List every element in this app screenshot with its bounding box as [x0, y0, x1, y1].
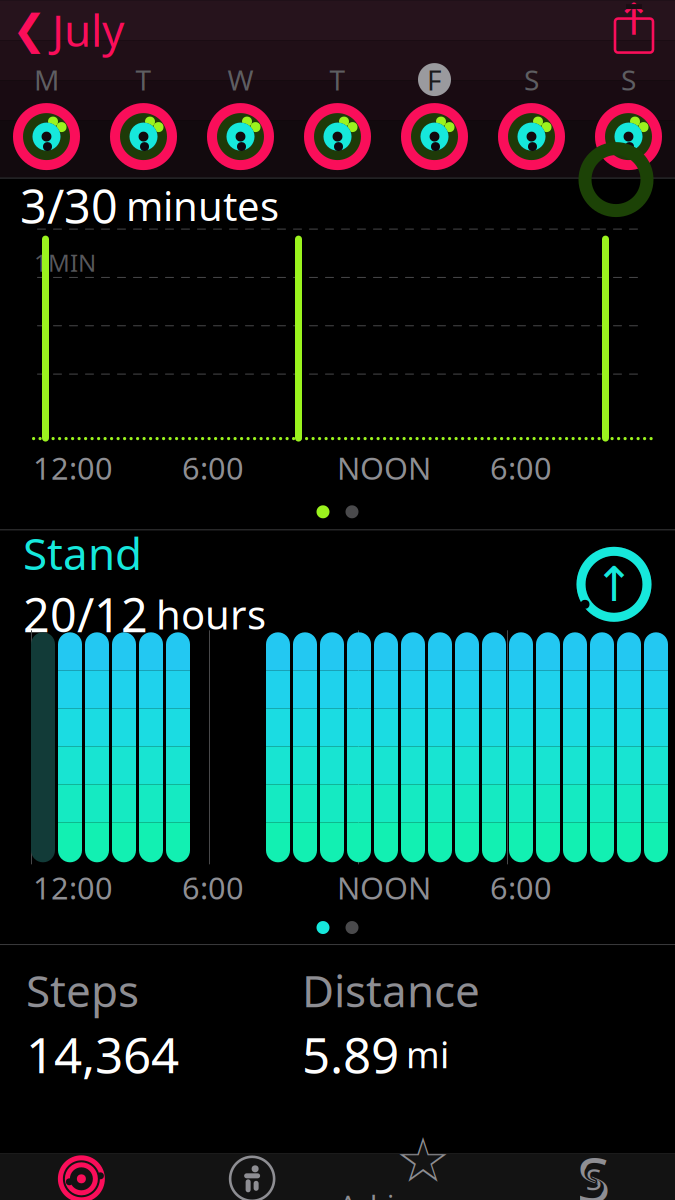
button[interactable]: F: [386, 63, 483, 172]
staticText: 6:00: [182, 448, 244, 488]
staticText: S: [524, 61, 539, 98]
staticText: ↑: [615, 0, 652, 44]
staticText: F: [427, 61, 442, 98]
staticText: S: [589, 1168, 598, 1189]
staticText: M: [34, 61, 59, 98]
button[interactable]: S: [483, 63, 580, 172]
staticText: minutes: [126, 179, 279, 232]
staticText: ↑: [594, 557, 634, 612]
staticText: 6:00: [490, 448, 552, 488]
button[interactable]: T: [289, 63, 386, 172]
button[interactable]: Share: [597, 2, 675, 58]
staticText: NOON: [337, 448, 431, 488]
button[interactable]: Stand goal met: [571, 541, 657, 627]
staticText: ❮: [12, 6, 47, 53]
staticText: 12:00: [33, 867, 113, 908]
button[interactable]: S: [580, 63, 675, 172]
button[interactable]: S: [508, 1149, 675, 1200]
button[interactable]: T: [95, 63, 192, 172]
staticText: ★: [401, 1132, 445, 1188]
staticText: 14,364: [26, 1021, 179, 1087]
button[interactable]: ★: [337, 1130, 508, 1200]
staticText: S: [577, 1138, 611, 1200]
staticText: Distance: [302, 961, 480, 1019]
staticText: 6:00: [490, 867, 552, 908]
staticText: T: [329, 61, 345, 98]
staticText: July: [52, 0, 124, 59]
staticText: Stand: [23, 524, 142, 582]
staticText: 1MIN: [34, 247, 96, 278]
staticText: S: [586, 1159, 602, 1198]
staticText: T: [135, 61, 151, 98]
button[interactable]: Workouts: [167, 1149, 338, 1200]
button[interactable]: ❮: [0, 0, 138, 68]
staticText: S: [621, 61, 636, 98]
staticText: 20/12: [23, 583, 148, 645]
staticText: Achievements: [339, 1186, 507, 1200]
button[interactable]: M: [0, 63, 95, 172]
staticText: 6:00: [182, 867, 244, 908]
staticText: hours: [156, 587, 266, 641]
staticText: ★: [395, 1125, 450, 1195]
button[interactable]: W: [192, 63, 289, 172]
button[interactable]: History: [0, 1149, 167, 1200]
staticText: mi: [406, 1030, 449, 1078]
staticText: 3/30: [20, 175, 118, 237]
staticText: S: [582, 1150, 606, 1200]
staticText: 12:00: [33, 448, 113, 488]
staticText: W: [227, 61, 253, 98]
staticText: 5.89: [302, 1021, 399, 1087]
staticText: ★: [395, 1125, 450, 1195]
staticText: NOON: [337, 867, 431, 908]
staticText: Steps: [26, 961, 139, 1019]
